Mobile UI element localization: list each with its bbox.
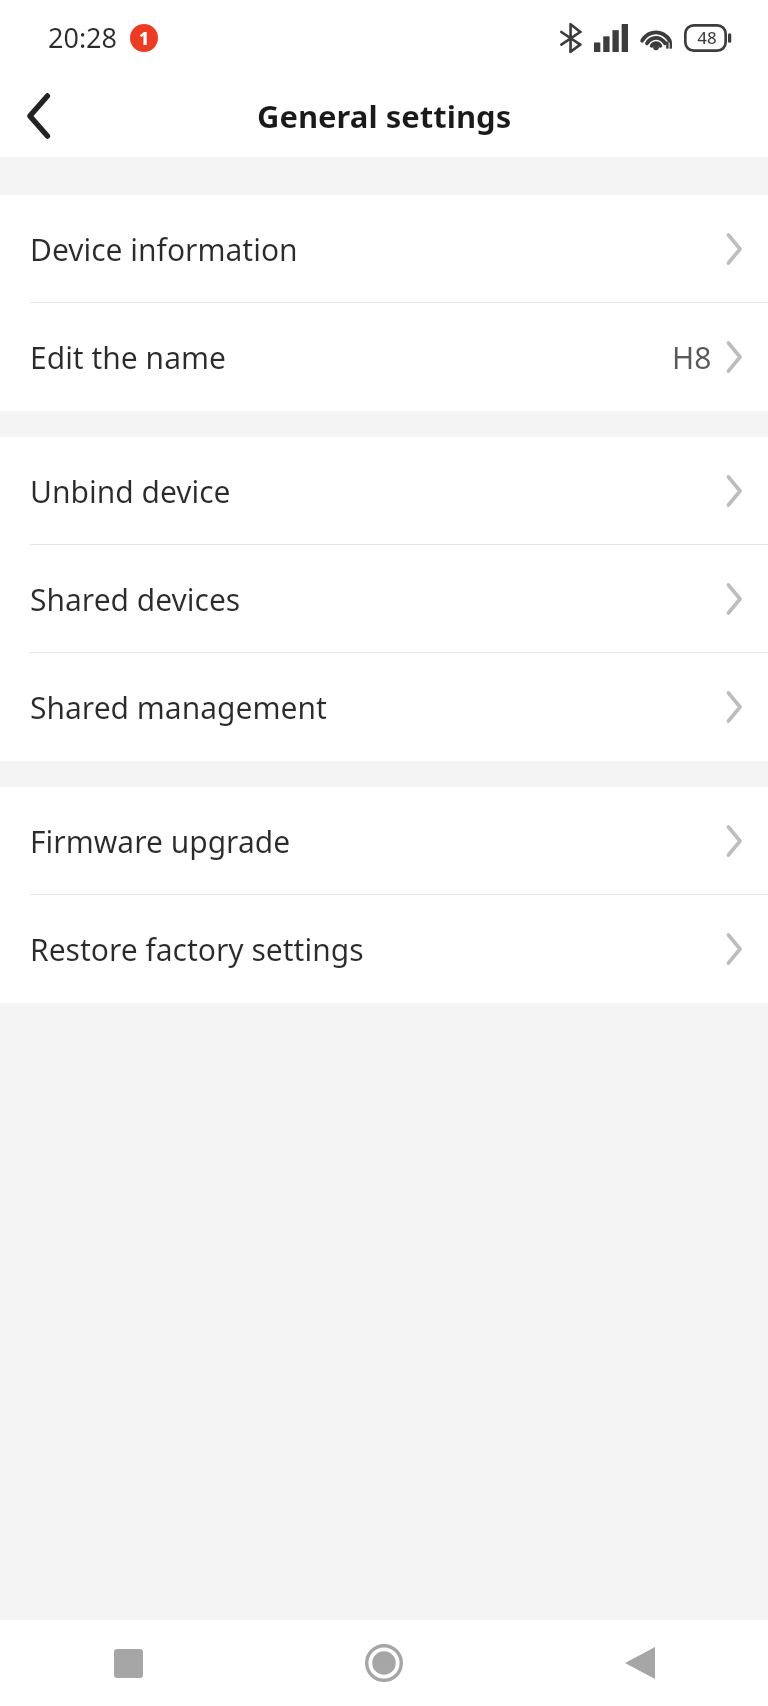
- staticText: Restore factory settings: [30, 929, 364, 970]
- button[interactable]: Unbind device: [0, 437, 768, 545]
- button[interactable]: Shared devices: [0, 545, 768, 653]
- staticText: Shared management: [30, 687, 327, 728]
- staticText: General settings: [257, 95, 512, 137]
- staticText: Edit the name: [30, 337, 226, 378]
- staticText: 48: [697, 26, 717, 49]
- button[interactable]: Edit the name: [0, 303, 768, 411]
- button[interactable]: Recent apps: [0, 1620, 256, 1706]
- button[interactable]: Device information: [0, 195, 768, 303]
- staticText: 20:28: [48, 19, 118, 56]
- button[interactable]: Restore factory settings: [0, 895, 768, 1003]
- staticText: 1: [139, 26, 150, 51]
- staticText: Firmware upgrade: [30, 821, 291, 862]
- button[interactable]: Back: [512, 1620, 768, 1706]
- staticText: Unbind device: [30, 471, 231, 512]
- button[interactable]: Back: [6, 83, 72, 149]
- staticText: H8: [672, 337, 712, 378]
- button[interactable]: Shared management: [0, 653, 768, 761]
- staticText: Shared devices: [30, 579, 241, 620]
- button[interactable]: Home: [256, 1620, 512, 1706]
- button[interactable]: Firmware upgrade: [0, 787, 768, 895]
- staticText: Device information: [30, 229, 298, 270]
